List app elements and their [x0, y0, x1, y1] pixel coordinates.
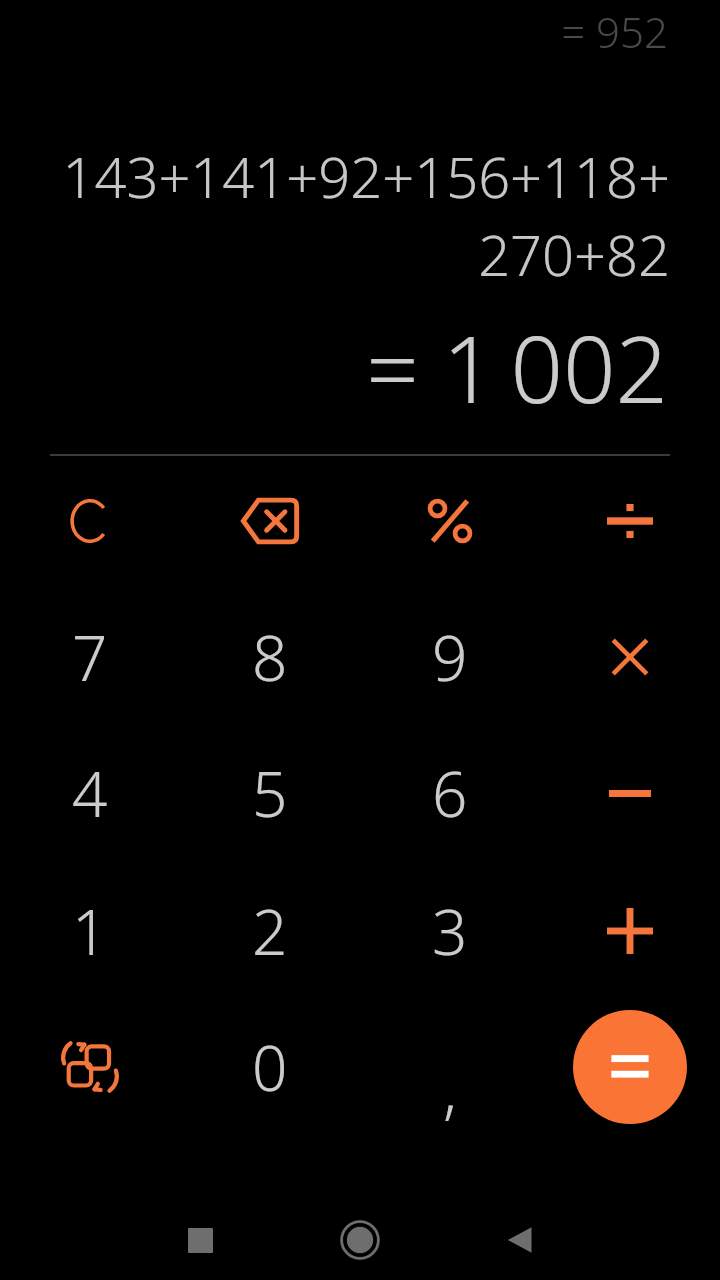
button[interactable]: Minus — [562, 725, 698, 861]
staticText: 9 — [432, 615, 468, 699]
button[interactable]: Multiply — [562, 589, 698, 725]
staticText: 3 — [432, 889, 468, 973]
staticText: 2 — [252, 889, 288, 973]
button[interactable]: Recent apps — [160, 1200, 240, 1280]
button[interactable]: 8 — [202, 589, 338, 725]
button[interactable]: 143+141+92+156+118+270+82 — [50, 138, 670, 293]
button[interactable]: Equals — [573, 1010, 687, 1124]
staticText: 143+141+92+156+118+270+82 — [50, 138, 670, 293]
button[interactable]: Home — [320, 1200, 400, 1280]
button[interactable]: 7 — [22, 589, 158, 725]
staticText: 1 — [72, 889, 108, 973]
staticText: 7 — [72, 615, 108, 699]
button[interactable]: 1 — [22, 863, 158, 999]
button[interactable]: 9 — [382, 589, 518, 725]
staticText: = 1 002 — [0, 305, 668, 430]
staticText: 6 — [432, 751, 468, 835]
button[interactable]: 6 — [382, 725, 518, 861]
button[interactable]: Divide — [562, 453, 698, 589]
staticText: 5 — [252, 751, 288, 835]
button[interactable]: 3 — [382, 863, 518, 999]
staticText: = 952 — [0, 3, 668, 60]
button[interactable]: Back — [480, 1200, 560, 1280]
button[interactable]: , — [382, 999, 518, 1135]
staticText: , — [443, 1047, 457, 1131]
button[interactable]: Plus — [562, 863, 698, 999]
button[interactable]: = 1 002 — [0, 305, 668, 430]
button[interactable]: = 952 — [0, 0, 720, 62]
button[interactable]: Convert units — [22, 999, 158, 1135]
button[interactable]: 2 — [202, 863, 338, 999]
button[interactable]: 0 — [202, 999, 338, 1135]
button[interactable]: Percent — [382, 453, 518, 589]
button[interactable]: Backspace — [202, 453, 338, 589]
button[interactable]: Clear — [22, 453, 158, 589]
staticText: 8 — [252, 615, 288, 699]
staticText: 0 — [252, 1025, 288, 1109]
staticText: 4 — [72, 751, 108, 835]
button[interactable]: 4 — [22, 725, 158, 861]
button[interactable]: 5 — [202, 725, 338, 861]
